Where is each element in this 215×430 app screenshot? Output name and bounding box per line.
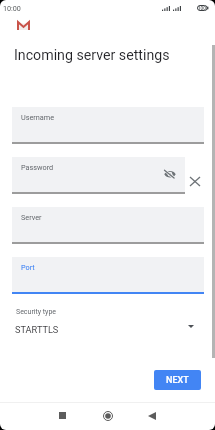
button[interactable]: Username bbox=[12, 107, 204, 145]
staticText: Username bbox=[21, 113, 55, 122]
staticText: 100 bbox=[198, 6, 206, 11]
staticText: Password bbox=[21, 163, 54, 172]
button[interactable]: Password bbox=[12, 157, 185, 195]
staticText: Incoming server settings bbox=[14, 47, 170, 64]
staticText: Port bbox=[21, 263, 35, 272]
button[interactable]: Home bbox=[97, 405, 118, 426]
staticText: STARTTLS bbox=[15, 324, 59, 335]
button[interactable]: Back bbox=[141, 405, 162, 426]
button[interactable]: Show password bbox=[160, 162, 180, 185]
button[interactable]: Clear password bbox=[186, 169, 203, 193]
button[interactable]: Recent apps bbox=[52, 405, 73, 426]
button[interactable]: Security type bbox=[12, 303, 204, 337]
staticText: NEXT bbox=[166, 375, 189, 386]
button[interactable]: Server bbox=[12, 207, 204, 245]
button[interactable]: Port bbox=[12, 257, 204, 295]
staticText: Server bbox=[21, 213, 42, 222]
staticText: Security type bbox=[16, 308, 57, 316]
staticText: 10:00 bbox=[3, 4, 21, 12]
button[interactable]: NEXT bbox=[154, 370, 201, 390]
